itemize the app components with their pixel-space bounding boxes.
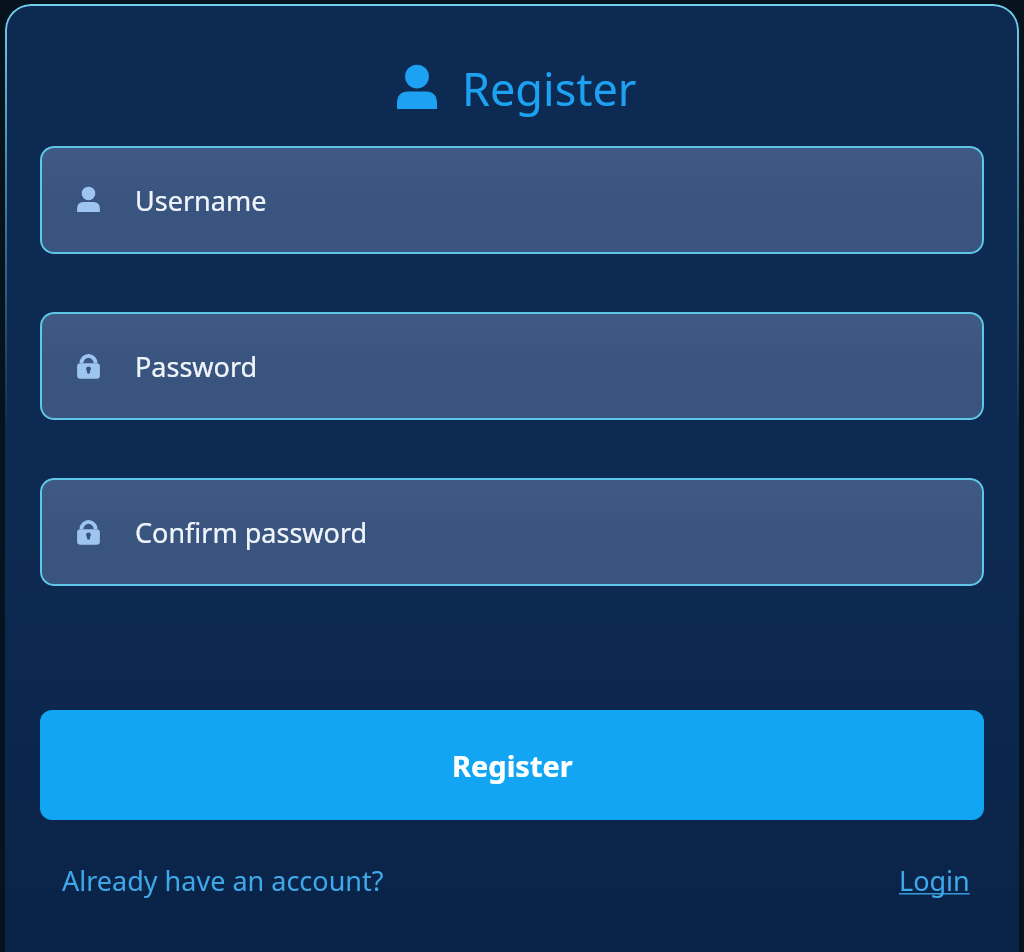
other: Person (388, 60, 446, 118)
button[interactable]: Login (899, 862, 970, 899)
other: Lock (72, 516, 105, 549)
button[interactable]: Lock (40, 312, 984, 420)
button[interactable]: Lock (40, 478, 984, 586)
staticText: Register (462, 58, 637, 119)
button[interactable]: Register (40, 710, 984, 820)
staticText: Already have an account? (62, 862, 384, 899)
button[interactable]: Person (40, 146, 984, 254)
other: Person (72, 184, 105, 217)
staticText: Login (899, 862, 970, 899)
staticText: Register (452, 746, 573, 785)
staticText: Confirm password (135, 514, 368, 551)
staticText: Username (135, 182, 267, 219)
other: Lock (72, 350, 105, 383)
staticText: Password (135, 348, 258, 385)
button[interactable]: Already have an account? (62, 862, 384, 899)
